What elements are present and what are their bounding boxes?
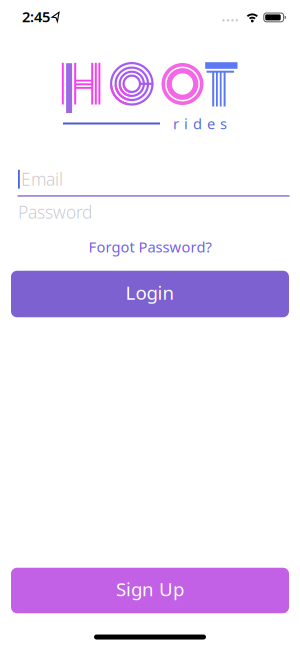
staticText: d (193, 114, 202, 133)
staticText: e (207, 114, 215, 133)
staticText: r (173, 114, 179, 133)
button[interactable]: Forgot Password? (88, 237, 211, 257)
button[interactable]: Password (18, 198, 298, 226)
staticText: Sign Up (116, 577, 184, 601)
staticText: Password (18, 200, 92, 223)
staticText: i (184, 114, 188, 133)
button[interactable]: Sign Up (11, 568, 289, 613)
staticText: Email (21, 167, 63, 190)
staticText: 2:45 (22, 7, 50, 26)
button[interactable]: Login (11, 271, 289, 317)
button[interactable]: Email (21, 163, 300, 195)
staticText: Login (125, 280, 174, 305)
staticText: Forgot Password? (88, 237, 211, 257)
staticText: s (220, 114, 227, 133)
